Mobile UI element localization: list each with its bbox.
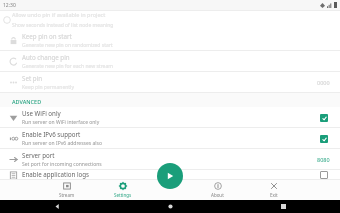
button[interactable]: Auto change pin (0, 51, 340, 72)
staticText: About (211, 192, 224, 198)
staticText: Generate new pin on randomized start (22, 42, 113, 49)
staticText: Show seconds instead of list node meanin… (12, 22, 114, 29)
button[interactable]: Stream (46, 180, 87, 200)
button[interactable]: Keep pin on start (0, 30, 340, 51)
staticText: 12:30 (3, 2, 16, 9)
staticText: Exit (270, 192, 278, 198)
staticText: Run server on IPv6 addresses also (22, 140, 102, 147)
staticText: Stream (59, 192, 75, 198)
button[interactable]: About (197, 180, 238, 200)
staticText: Use WiFi only (22, 109, 61, 117)
staticText: Keep pin permanently (22, 84, 74, 91)
staticText: Enable IPv6 support (22, 130, 81, 138)
staticText: Settings (114, 192, 132, 198)
button[interactable]: Start (157, 163, 183, 189)
button[interactable]: Enable application logs (0, 170, 340, 180)
staticText: Auto change pin (22, 53, 70, 61)
staticText: Set port for incoming connections (22, 161, 102, 168)
button[interactable]: Unchecked (318, 170, 330, 180)
staticText: 0000 (317, 79, 330, 86)
button[interactable]: Use WiFi only (0, 107, 340, 128)
button[interactable]: Back (0, 200, 114, 213)
staticText: Set pin (22, 74, 42, 82)
staticText: Generate new pin for each new stream (22, 63, 113, 70)
button[interactable]: Checked (318, 133, 330, 145)
button[interactable]: Settings (102, 180, 143, 200)
staticText: Keep pin on start (22, 32, 72, 40)
staticText: Server port (22, 151, 55, 159)
button[interactable]: Set pin (0, 72, 340, 93)
button[interactable]: Home (114, 200, 227, 213)
staticText: Allow undo pin if available in project (12, 11, 106, 18)
button[interactable]: Server port (0, 149, 340, 170)
button[interactable]: Checked (318, 112, 330, 124)
button[interactable]: Recents (227, 200, 340, 213)
staticText: Enable application logs (22, 170, 90, 178)
button[interactable]: Enable IPv6 support (0, 128, 340, 149)
staticText: Run server on WiFi interface only (22, 119, 100, 126)
button[interactable]: Exit (253, 180, 294, 200)
staticText: ADVANCED (12, 98, 42, 105)
staticText: 8080 (317, 156, 330, 163)
